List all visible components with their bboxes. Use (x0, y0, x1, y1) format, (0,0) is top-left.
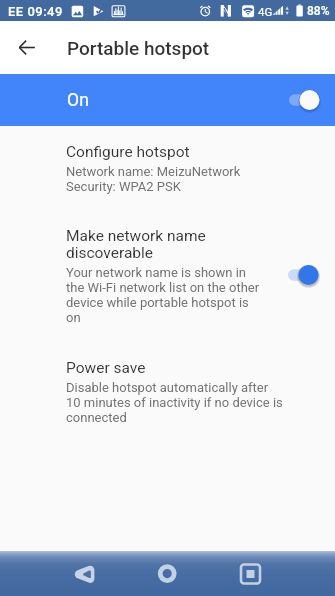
staticText: Configure hotspot (66, 143, 190, 161)
button[interactable]: Make network name discoverable (0, 194, 335, 325)
button[interactable]: Back (0, 21, 53, 74)
button[interactable]: Configure hotspot (0, 126, 335, 194)
button[interactable]: Home (111, 551, 223, 596)
staticText: Portable hotspot (67, 37, 210, 59)
staticText: Power save (66, 359, 146, 377)
staticText: 4G (258, 5, 273, 18)
button[interactable]: Recent apps (223, 551, 335, 596)
staticText: Your network name is shown in the Wi-Fi … (66, 265, 260, 325)
staticText: Network name: MeizuNetwork Security: WPA… (66, 164, 241, 194)
staticText: 88% (307, 4, 330, 18)
staticText: Disable hotspot automatically after 10 m… (66, 380, 283, 425)
button[interactable]: On (0, 74, 335, 126)
button[interactable]: Power save (0, 325, 335, 425)
staticText: EE 09:49 (8, 4, 63, 19)
staticText: On (67, 90, 90, 111)
button[interactable]: Back (0, 551, 111, 596)
staticText: Make network name discoverable (66, 227, 206, 262)
